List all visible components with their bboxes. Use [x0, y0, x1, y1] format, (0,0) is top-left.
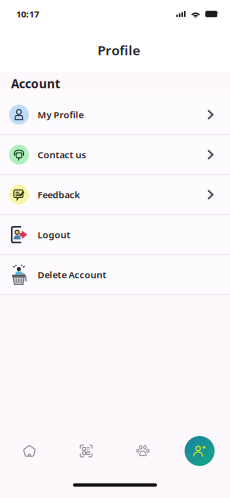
button[interactable]: My Profile — [0, 95, 230, 135]
button[interactable]: Home — [1, 434, 58, 468]
staticText: Account — [11, 75, 60, 91]
button[interactable]: Contact us — [0, 135, 230, 175]
button[interactable]: Profile — [171, 434, 228, 468]
button[interactable]: Scan — [58, 434, 115, 468]
staticText: 10:17 — [16, 8, 39, 20]
button[interactable]: Logout — [0, 215, 230, 255]
staticText: Profile — [97, 41, 140, 59]
staticText: Delete Account — [37, 268, 106, 281]
staticText: Logout — [37, 228, 70, 241]
button[interactable]: Feedback — [0, 175, 230, 215]
button[interactable]: Pets — [114, 434, 171, 468]
staticText: Contact us — [37, 148, 86, 161]
button[interactable]: Delete Account — [0, 255, 230, 295]
staticText: My Profile — [37, 108, 83, 121]
staticText: Feedback — [37, 188, 79, 201]
